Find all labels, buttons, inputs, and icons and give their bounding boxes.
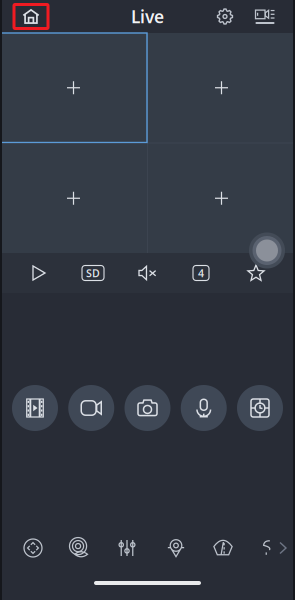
button[interactable]: Light bbox=[251, 532, 281, 564]
button[interactable]: Preset bbox=[154, 532, 198, 564]
button[interactable]: Settings bbox=[210, 2, 240, 30]
button[interactable]: Record bbox=[68, 385, 114, 431]
button[interactable]: Wiper bbox=[202, 532, 244, 564]
button[interactable]: Image settings bbox=[106, 532, 148, 564]
button[interactable]: Joystick bbox=[249, 232, 285, 268]
button[interactable]: Add camera bbox=[0, 33, 147, 142]
button[interactable]: Favourite bbox=[231, 253, 281, 293]
button[interactable]: Stream quality SD bbox=[68, 253, 118, 293]
button[interactable]: PTZ control bbox=[13, 532, 53, 564]
staticText: 4 bbox=[198, 266, 204, 280]
button[interactable]: Add camera bbox=[0, 143, 147, 253]
button[interactable]: Snapshot bbox=[124, 385, 170, 431]
button[interactable]: Playback bbox=[12, 385, 58, 431]
button[interactable]: Talk bbox=[181, 385, 227, 431]
staticText: Live bbox=[131, 5, 164, 28]
button[interactable]: Mute bbox=[122, 253, 172, 293]
button[interactable]: Split layout bbox=[176, 253, 226, 293]
button[interactable]: More tools bbox=[274, 532, 292, 564]
button[interactable]: Camera list bbox=[250, 2, 280, 30]
button[interactable]: Home bbox=[13, 2, 49, 30]
button[interactable]: Play bbox=[14, 253, 64, 293]
staticText: SD bbox=[86, 266, 100, 280]
button[interactable]: Add camera bbox=[148, 143, 295, 253]
button[interactable]: Two-way talk bbox=[59, 532, 99, 564]
button[interactable]: Timeline bbox=[237, 385, 283, 431]
button[interactable]: Add camera bbox=[148, 33, 295, 142]
